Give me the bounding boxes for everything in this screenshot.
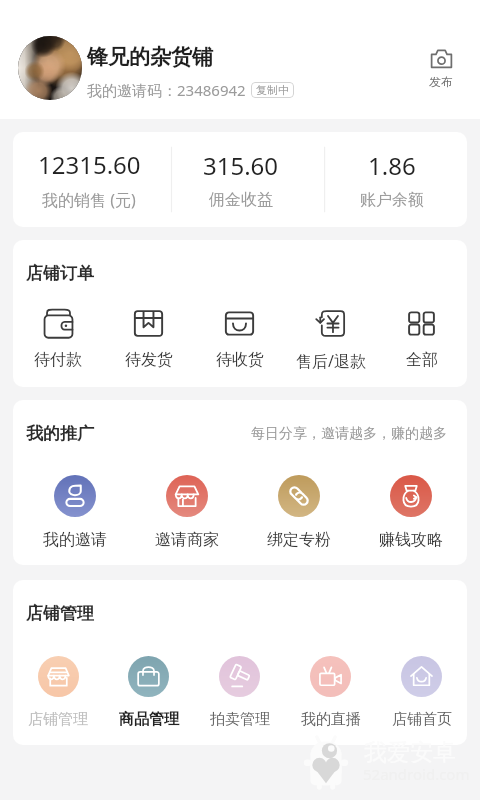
button[interactable]: 12315.60 — [13, 148, 165, 211]
button[interactable]: 待付款 — [13, 308, 103, 370]
staticText: 我的推广 — [26, 423, 94, 444]
button[interactable]: 赚钱攻略 — [355, 475, 467, 550]
staticText: 店铺订单 — [26, 263, 94, 284]
button[interactable]: 待发货 — [103, 308, 194, 370]
button[interactable]: 拍卖管理 — [194, 656, 285, 729]
button[interactable]: 售后/退款 — [285, 308, 376, 372]
button[interactable]: 邀请商家 — [131, 475, 243, 550]
staticText: 售后/退款 — [296, 350, 366, 372]
button[interactable]: 店铺首页 — [376, 656, 467, 729]
staticText: 绑定专粉 — [267, 530, 331, 550]
staticText: 我的直播 — [301, 710, 361, 729]
staticText: 拍卖管理 — [210, 710, 270, 729]
button[interactable]: 店铺管理 — [13, 656, 103, 729]
staticText: 店铺首页 — [392, 710, 452, 729]
button[interactable]: 待收货 — [194, 308, 285, 370]
staticText: 待付款 — [34, 350, 82, 370]
staticText: 全部 — [406, 350, 438, 370]
staticText: 发布 — [429, 74, 453, 89]
staticText: 锋兄的杂货铺 — [87, 44, 213, 70]
staticText: 我的销售 (元) — [42, 189, 136, 211]
button[interactable]: 全部 — [376, 308, 467, 370]
staticText: 商品管理 — [119, 710, 179, 729]
button[interactable]: 复制中 — [251, 82, 294, 98]
staticText: 店铺管理 — [26, 603, 94, 624]
staticText: 待发货 — [125, 350, 173, 370]
staticText: 12315.60 — [38, 148, 141, 181]
button[interactable]: 绑定专粉 — [243, 475, 355, 550]
staticText: 复制中 — [256, 83, 289, 97]
staticText: 佣金收益 — [209, 190, 273, 210]
button[interactable]: 商品管理 — [103, 656, 194, 729]
button[interactable]: 发布 — [423, 48, 466, 89]
button[interactable]: 1.86 — [316, 149, 467, 210]
staticText: 我爱安卓 — [364, 738, 456, 767]
staticText: 315.60 — [203, 149, 279, 182]
staticText: 待收货 — [216, 350, 264, 370]
staticText: 店铺管理 — [28, 710, 88, 729]
staticText: 1.86 — [368, 149, 416, 182]
staticText: 我的邀请 — [43, 530, 107, 550]
button[interactable]: 我的邀请 — [18, 475, 131, 550]
button[interactable]: 我的直播 — [285, 656, 376, 729]
button[interactable]: 315.60 — [165, 149, 316, 210]
staticText: 我的邀请码：23486942 — [87, 80, 246, 100]
staticText: 账户余额 — [360, 190, 424, 210]
staticText: 赚钱攻略 — [379, 530, 443, 550]
staticText: 每日分享，邀请越多，赚的越多 — [251, 425, 447, 443]
staticText: 邀请商家 — [155, 530, 219, 550]
